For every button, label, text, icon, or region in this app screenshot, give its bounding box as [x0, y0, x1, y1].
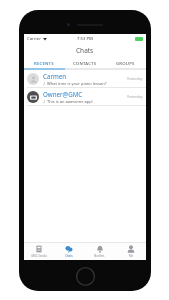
staticText: Yesterday [127, 94, 143, 99]
staticText: Carrier [27, 36, 41, 42]
staticText: ♪ [43, 99, 47, 104]
staticText: Owner@GMC [43, 90, 83, 98]
staticText: This is an awesome app! [47, 99, 93, 104]
button[interactable]: Owner@GMC [24, 88, 146, 106]
button[interactable]: Me [115, 243, 146, 260]
staticText: Yesterday [127, 76, 143, 81]
staticText: Carmen [43, 72, 67, 80]
button[interactable]: GROUPS [105, 57, 146, 68]
staticText: Chats [65, 254, 73, 258]
staticText: What time is your piano lesson? [47, 81, 107, 86]
staticText: Chats [76, 46, 94, 55]
staticText: CONTACTS [73, 60, 97, 66]
staticText: Notifies [94, 254, 105, 258]
button[interactable]: Chats [54, 243, 84, 260]
button[interactable]: CONTACTS [64, 57, 105, 68]
staticText: 7:53 PM [77, 36, 93, 42]
button[interactable]: GMC Stocks [24, 243, 54, 260]
staticText: ♪ [43, 81, 47, 86]
staticText: RECENTS [34, 60, 54, 66]
button[interactable]: RECENTS [24, 57, 64, 68]
staticText: Me [129, 254, 134, 258]
button[interactable]: Carmen [24, 70, 146, 88]
button[interactable]: Notifies [84, 243, 115, 260]
staticText: GROUPS [116, 60, 135, 66]
staticText: GMC Stocks [31, 254, 47, 258]
